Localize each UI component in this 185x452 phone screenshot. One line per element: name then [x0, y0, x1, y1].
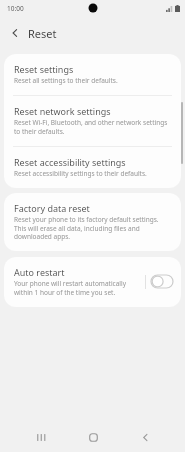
button[interactable]: Auto restart toggle	[151, 275, 173, 288]
button[interactable]: Auto restart	[4, 257, 181, 307]
button[interactable]: Factory data reset	[4, 193, 181, 251]
button[interactable]: Back	[5, 23, 25, 43]
button[interactable]: Reset network settings	[4, 96, 181, 146]
staticText: Reset network settings	[14, 105, 111, 117]
staticText: Reset your phone to its factory default …	[14, 215, 169, 241]
staticText: Factory data reset	[14, 202, 90, 214]
staticText: Reset Wi-Fi, Bluetooth, and other networ…	[14, 118, 169, 136]
staticText: 10:00	[7, 4, 24, 13]
staticText: Reset settings	[14, 63, 74, 75]
button[interactable]: Back	[133, 425, 157, 449]
button[interactable]: Reset settings	[4, 54, 181, 95]
button[interactable]: Home	[81, 425, 105, 449]
staticText: Reset accessibility settings to their de…	[14, 169, 147, 178]
staticText: Reset	[28, 26, 57, 41]
staticText: Reset all settings to their defaults.	[14, 76, 118, 85]
button[interactable]: Reset accessibility settings	[4, 147, 181, 188]
staticText: Auto restart	[14, 266, 65, 278]
button[interactable]: Recent apps	[28, 425, 52, 449]
staticText: Your phone will restart automatically wi…	[14, 279, 141, 297]
staticText: Reset accessibility settings	[14, 156, 126, 168]
